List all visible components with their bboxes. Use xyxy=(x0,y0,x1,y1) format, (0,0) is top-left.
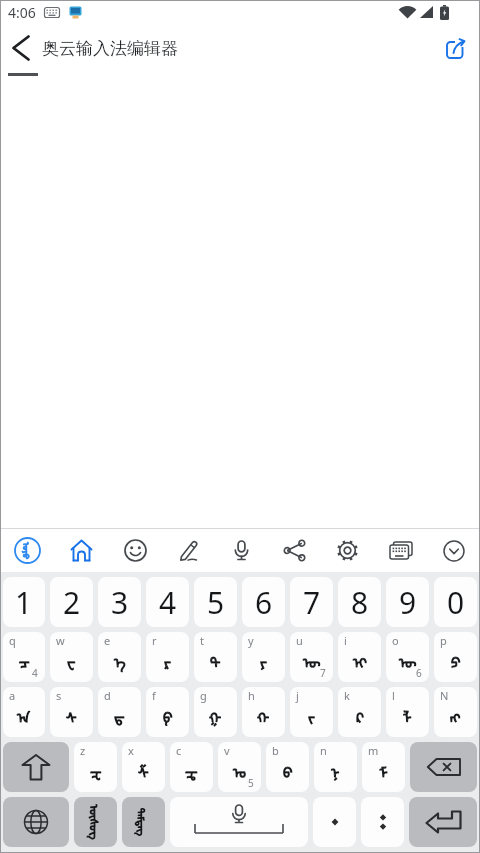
staticText: ᠲᠡᠮᠳᠡᠭ xyxy=(135,808,152,837)
staticText: l xyxy=(392,688,395,703)
staticText: ᠫ xyxy=(451,648,461,673)
staticText: 5 xyxy=(248,776,254,790)
button[interactable] xyxy=(54,529,108,572)
button[interactable]: p xyxy=(434,632,477,682)
staticText: ᠰ xyxy=(66,703,77,728)
button[interactable] xyxy=(3,797,69,847)
button[interactable] xyxy=(374,529,427,572)
staticText: ᠨ xyxy=(331,758,340,783)
button[interactable]: m xyxy=(362,742,405,792)
button[interactable]: 7 xyxy=(290,577,333,627)
staticText: ᠽ xyxy=(90,758,102,783)
staticText: 7 xyxy=(320,666,326,680)
button[interactable]: w xyxy=(50,632,93,682)
button[interactable] xyxy=(215,529,268,572)
button[interactable]: x xyxy=(122,742,165,792)
staticText: ᠽ xyxy=(90,758,102,783)
staticText: 0 xyxy=(447,582,465,623)
staticText: ᠸ xyxy=(67,648,76,673)
button[interactable]: ᠦᠰᠦᠭ xyxy=(74,797,117,847)
staticText: N xyxy=(440,688,449,703)
staticText: ᠪ xyxy=(283,758,293,783)
button[interactable]: 6 xyxy=(242,577,285,627)
staticText: 4:06 xyxy=(8,3,36,22)
staticText: o xyxy=(392,633,399,648)
button[interactable]: u xyxy=(290,632,333,682)
staticText: ᠹ xyxy=(163,703,173,728)
staticText: ᠵ xyxy=(308,703,315,728)
button[interactable] xyxy=(108,529,162,572)
button[interactable]: 5 xyxy=(194,577,237,627)
staticText: ᠦ xyxy=(303,648,321,673)
button[interactable]: b xyxy=(266,742,309,792)
staticText: ᠷ xyxy=(164,648,171,673)
staticText: ᠱ xyxy=(138,758,149,783)
button[interactable]: y xyxy=(242,632,285,682)
button[interactable]: s xyxy=(50,687,93,737)
staticText: ᠬ xyxy=(257,703,270,728)
button[interactable]: c xyxy=(170,742,213,792)
staticText: ᠠ xyxy=(17,703,31,728)
staticText: ᠦ xyxy=(303,648,321,673)
staticText: ᠺ xyxy=(356,703,364,728)
button[interactable] xyxy=(0,24,42,72)
button[interactable] xyxy=(162,529,215,572)
button[interactable]: 3 xyxy=(98,577,141,627)
button[interactable]: t xyxy=(194,632,237,682)
staticText: ᠭ xyxy=(209,703,222,728)
button[interactable] xyxy=(268,529,321,572)
button[interactable] xyxy=(409,797,477,847)
staticText: ᠹ xyxy=(163,703,173,728)
staticText: ᠡ xyxy=(114,648,126,673)
button[interactable]: d xyxy=(98,687,141,737)
button[interactable]: ᠲᠡᠮᠳᠡᠭ xyxy=(122,797,165,847)
staticText: x xyxy=(128,743,134,758)
button[interactable]: 0 xyxy=(434,577,477,627)
button[interactable] xyxy=(410,742,477,792)
staticText: ᠨ xyxy=(331,758,340,783)
staticText: i xyxy=(344,633,347,648)
staticText: c xyxy=(176,743,182,758)
staticText: ᠠ xyxy=(17,703,31,728)
staticText: ᠦᠰᠦᠭ xyxy=(86,804,105,840)
button[interactable]: N xyxy=(434,687,477,737)
staticText: ᠳ xyxy=(114,703,125,728)
button[interactable]: a xyxy=(3,687,45,737)
button[interactable]: h xyxy=(242,687,285,737)
button[interactable]: f xyxy=(146,687,189,737)
staticText: ᠫ xyxy=(451,648,461,673)
button[interactable] xyxy=(427,529,480,572)
button[interactable]: 4 xyxy=(146,577,189,627)
button[interactable]: g xyxy=(194,687,237,737)
button[interactable]: v xyxy=(218,742,261,792)
button[interactable]: z xyxy=(74,742,117,792)
button[interactable]: e xyxy=(98,632,141,682)
staticText: f xyxy=(152,688,156,703)
button[interactable]: 1 xyxy=(3,577,45,627)
staticText: 2 xyxy=(63,582,81,623)
button[interactable]: o xyxy=(386,632,429,682)
button[interactable]: q xyxy=(3,632,45,682)
staticText: e xyxy=(104,633,111,648)
button[interactable]: 2 xyxy=(50,577,93,627)
button[interactable]: l xyxy=(386,687,429,737)
button[interactable]: i xyxy=(338,632,381,682)
staticText: 8 xyxy=(351,582,369,623)
staticText: ᠤ xyxy=(233,758,247,783)
button[interactable] xyxy=(432,24,480,72)
staticText: ᠷ xyxy=(164,648,171,673)
button[interactable] xyxy=(361,797,404,847)
button[interactable]: j xyxy=(290,687,333,737)
button[interactable] xyxy=(313,797,356,847)
staticText: 6 xyxy=(416,666,422,680)
button[interactable] xyxy=(170,797,308,847)
button[interactable] xyxy=(321,529,374,572)
button[interactable]: r xyxy=(146,632,189,682)
button[interactable]: n xyxy=(314,742,357,792)
button[interactable]: ᠣᠶᠤ xyxy=(0,529,54,572)
staticText: u xyxy=(296,633,303,648)
button[interactable]: 9 xyxy=(386,577,429,627)
button[interactable]: 8 xyxy=(338,577,381,627)
button[interactable]: k xyxy=(338,687,381,737)
button[interactable] xyxy=(3,742,69,792)
